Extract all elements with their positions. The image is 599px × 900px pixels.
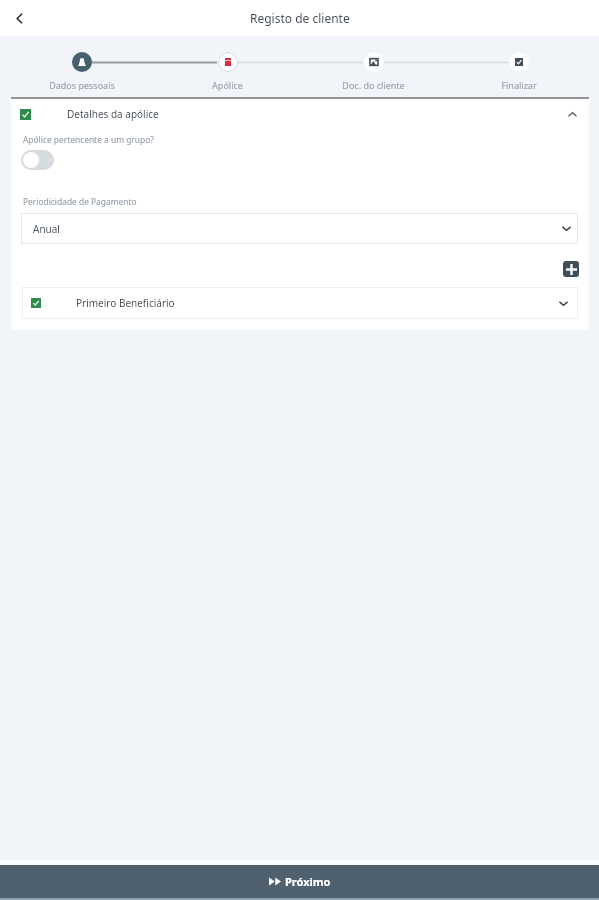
button[interactable]: Doc. do cliente <box>328 36 418 97</box>
button[interactable]: Anual <box>21 213 578 244</box>
button[interactable]: Primeiro Beneficiário <box>22 287 578 319</box>
staticText: Doc. do cliente <box>342 79 405 91</box>
staticText: Apólice pertencente a um grupo? <box>23 134 154 145</box>
staticText: Periodicidade de Pagamento <box>23 196 137 207</box>
staticText: Registo de cliente <box>250 10 350 26</box>
staticText: Primeiro Beneficiário <box>76 296 175 310</box>
button[interactable]: Apólice pertencente a um grupo <box>21 150 54 170</box>
button[interactable]: Back <box>6 5 32 31</box>
button[interactable]: Add <box>563 261 579 277</box>
staticText: Próximo <box>285 874 331 889</box>
button[interactable]: Próximo <box>0 865 599 898</box>
staticText: Finalizar <box>501 79 537 91</box>
button[interactable]: Finalizar <box>474 36 564 97</box>
staticText: Dados pessoais <box>49 79 115 91</box>
button[interactable]: Apólice <box>182 36 272 97</box>
staticText: Anual <box>33 222 60 236</box>
staticText: Apólice <box>212 79 243 91</box>
button[interactable]: Detalhes da apólice <box>11 103 589 125</box>
button[interactable]: Dados pessoais <box>37 36 127 97</box>
staticText: Detalhes da apólice <box>67 107 159 121</box>
